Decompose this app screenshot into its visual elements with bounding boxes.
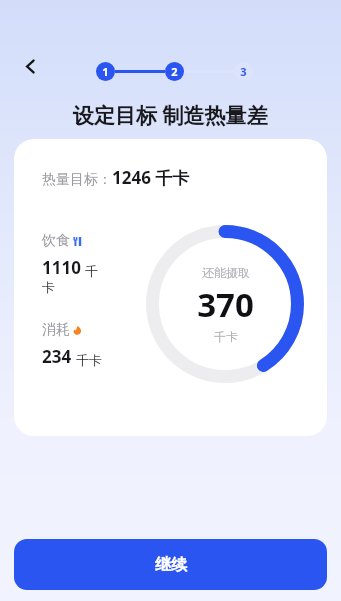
staticText: 2 [171,64,178,79]
button[interactable]: 继续 [14,539,327,590]
staticText: 3 [240,64,247,79]
staticText: 1246 千卡 [112,166,190,189]
button[interactable]: 2 [165,62,184,81]
button[interactable]: Back [15,51,45,81]
staticText: 还能摄取 [202,265,250,280]
staticText: 卡 [42,279,55,295]
staticText: 设定目标 制造热量差 [73,101,268,130]
staticText: 1110 [42,256,81,279]
staticText: 千 [85,263,98,279]
staticText: 234 [42,345,72,368]
staticText: 1 [102,64,109,79]
staticText: 370 [197,282,254,327]
staticText: 热量目标： [42,171,112,189]
button[interactable]: 1 [96,62,115,81]
button[interactable]: 3 [234,62,253,81]
staticText: 消耗 [42,321,70,339]
staticText: 继续 [155,555,187,575]
staticText: 饮食 [42,232,70,250]
staticText: 千卡 [76,352,102,368]
staticText: 千卡 [214,329,238,344]
